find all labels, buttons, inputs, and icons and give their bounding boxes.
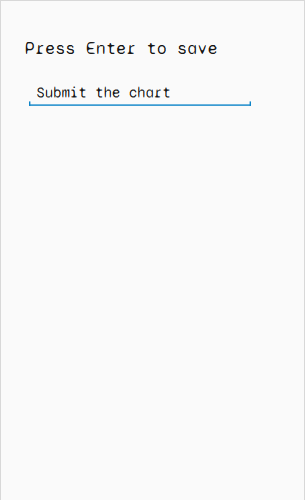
button[interactable]: Submit the chart [29,84,251,106]
staticText: Submit the chart [36,84,170,102]
staticText: Press Enter to save [25,38,218,59]
